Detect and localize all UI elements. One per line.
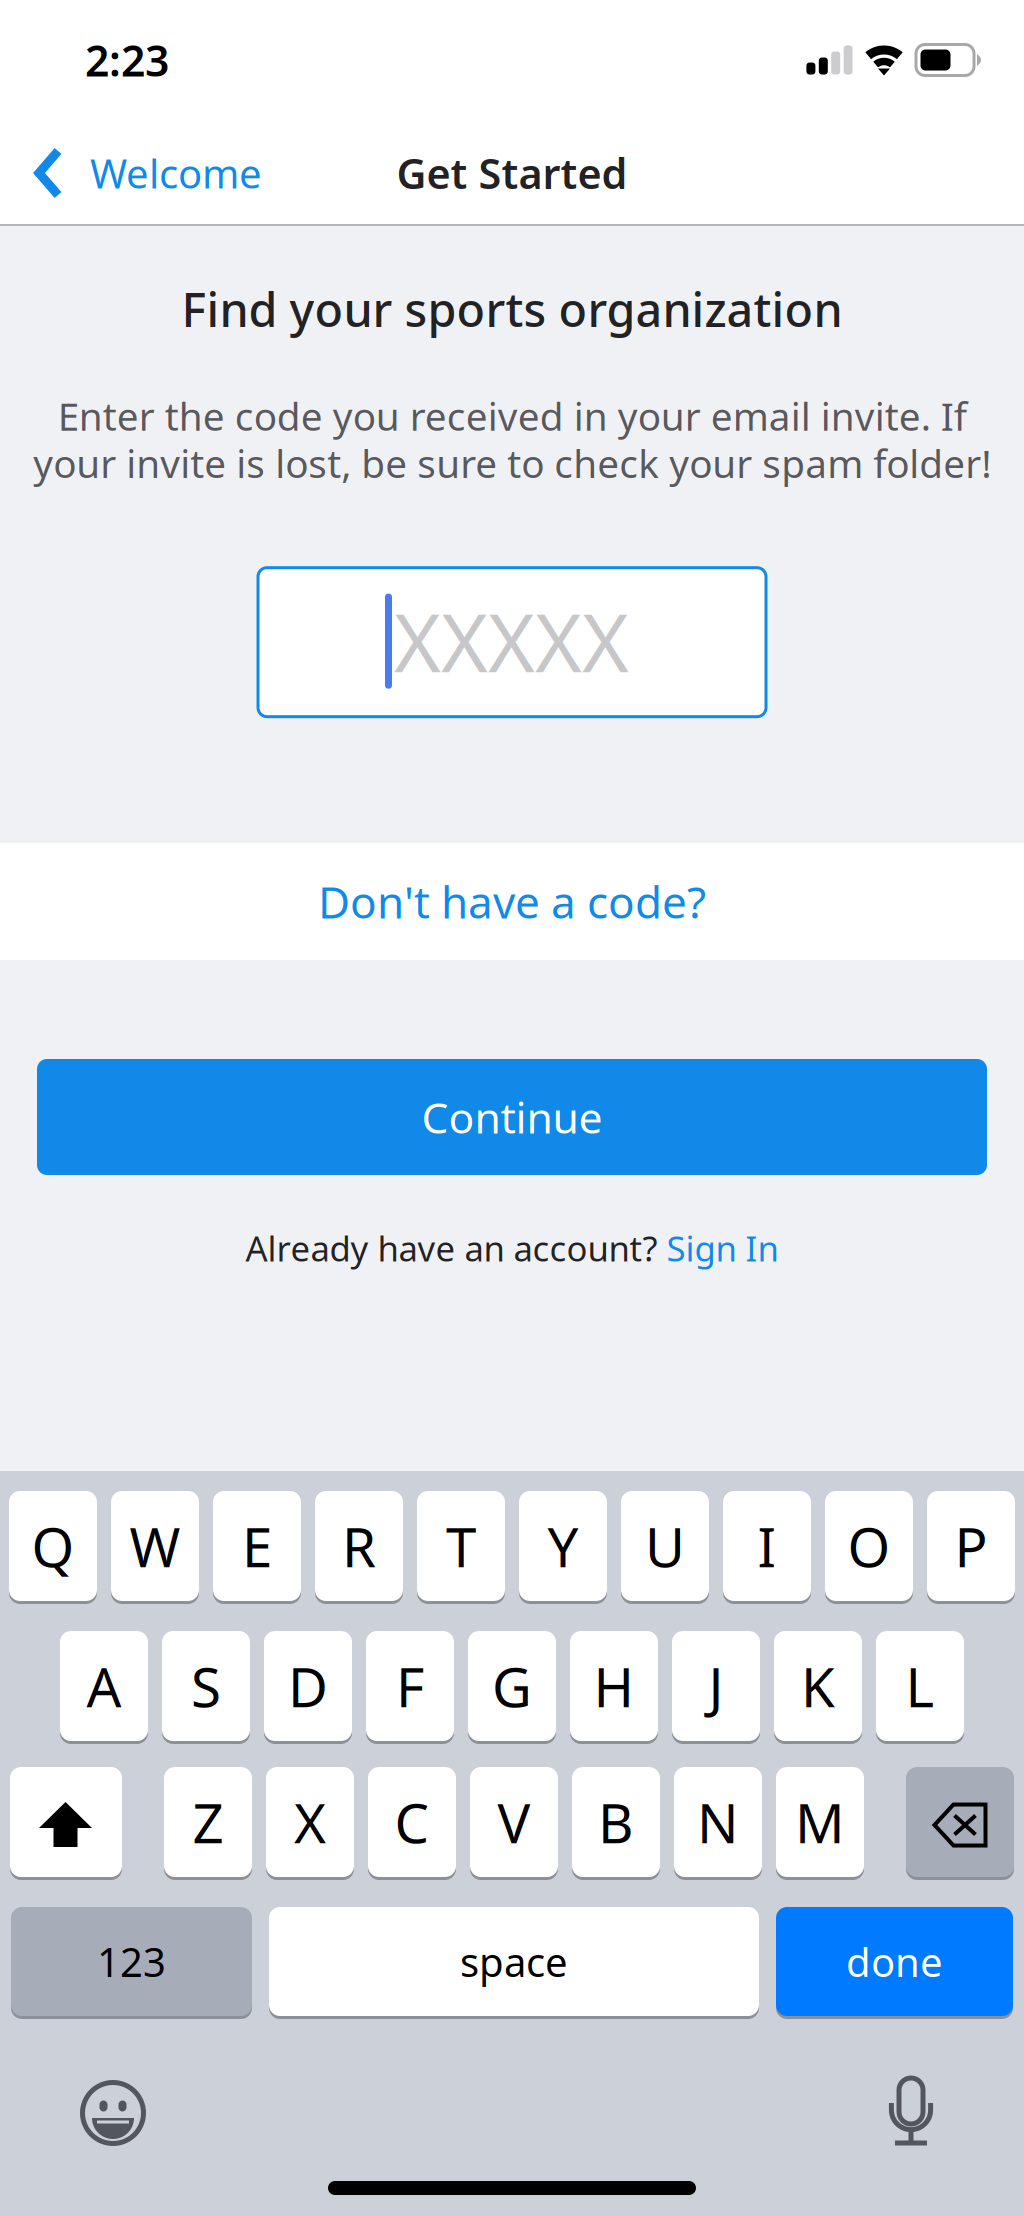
staticText: A (86, 1650, 121, 1722)
button[interactable]: I (723, 1491, 811, 1604)
button[interactable]: G (468, 1631, 556, 1744)
staticText: D (288, 1650, 328, 1722)
staticText: Z (192, 1786, 223, 1858)
staticText: K (801, 1650, 835, 1722)
staticText: M (795, 1786, 845, 1858)
button[interactable]: Emoji keyboard (50, 2065, 176, 2161)
button[interactable]: Z (164, 1767, 252, 1880)
button[interactable]: 123 (11, 1907, 252, 2019)
button[interactable]: Sign In (666, 1225, 778, 1271)
staticText: N (697, 1786, 739, 1858)
button[interactable]: V (470, 1767, 558, 1880)
button[interactable]: A (60, 1631, 148, 1744)
button[interactable]: T (417, 1491, 505, 1604)
button[interactable]: Y (519, 1491, 607, 1604)
staticText: H (593, 1650, 634, 1722)
button[interactable] (10, 1767, 122, 1880)
button[interactable]: H (570, 1631, 658, 1744)
button[interactable]: Q (9, 1491, 97, 1604)
staticText: Don't have a code? (318, 872, 706, 931)
staticText: done (846, 1935, 943, 1988)
staticText: S (191, 1650, 221, 1722)
staticText: C (394, 1786, 429, 1858)
button[interactable]: done (776, 1907, 1013, 2019)
staticText: Q (31, 1510, 74, 1582)
staticText: Continue (421, 1089, 602, 1145)
button[interactable]: S (162, 1631, 250, 1744)
staticText: E (242, 1510, 272, 1582)
button[interactable]: N (674, 1767, 762, 1880)
button[interactable]: R (315, 1491, 403, 1604)
staticText: P (954, 1510, 987, 1582)
button[interactable]: U (621, 1491, 709, 1604)
staticText: Get Started (396, 146, 627, 200)
button[interactable]: K (774, 1631, 862, 1744)
button[interactable]: B (572, 1767, 660, 1880)
staticText: XXXXX (394, 588, 629, 694)
staticText: O (847, 1510, 890, 1582)
button[interactable]: C (368, 1767, 456, 1880)
staticText: W (129, 1510, 180, 1582)
button[interactable]: W (111, 1491, 199, 1604)
staticText: U (645, 1510, 685, 1582)
staticText: I (757, 1510, 776, 1582)
staticText: Enter the code you received in your emai… (33, 390, 991, 489)
button[interactable]: D (264, 1631, 352, 1744)
button[interactable]: E (213, 1491, 301, 1604)
staticText: V (497, 1786, 530, 1858)
button[interactable]: J (672, 1631, 760, 1744)
staticText: B (598, 1786, 634, 1858)
button[interactable]: Welcome (0, 134, 262, 212)
staticText: Y (547, 1510, 578, 1582)
button[interactable]: P (927, 1491, 1015, 1604)
staticText: 123 (97, 1935, 166, 1988)
button[interactable]: XXXXX (258, 568, 766, 717)
staticText: L (905, 1650, 934, 1722)
button[interactable]: Dictation (848, 2065, 974, 2161)
staticText: Find your sports organization (181, 278, 842, 340)
staticText: G (492, 1650, 532, 1722)
button[interactable]: F (366, 1631, 454, 1744)
staticText: X (294, 1786, 326, 1858)
staticText: Already have an account? (245, 1225, 666, 1271)
staticText: T (446, 1510, 476, 1582)
button[interactable]: space (269, 1907, 759, 2019)
staticText: R (342, 1510, 376, 1582)
staticText: 2:23 (85, 32, 169, 88)
button[interactable] (906, 1767, 1014, 1880)
staticText: F (396, 1650, 424, 1722)
staticText: Welcome (90, 146, 262, 199)
button[interactable]: Continue (37, 1059, 987, 1175)
staticText: space (460, 1935, 568, 1988)
button[interactable]: L (876, 1631, 964, 1744)
button[interactable]: O (825, 1491, 913, 1604)
button[interactable]: X (266, 1767, 354, 1880)
staticText: J (708, 1650, 723, 1722)
button[interactable]: Don't have a code? (0, 843, 1024, 960)
staticText: Sign In (666, 1225, 778, 1271)
button[interactable]: M (776, 1767, 864, 1880)
